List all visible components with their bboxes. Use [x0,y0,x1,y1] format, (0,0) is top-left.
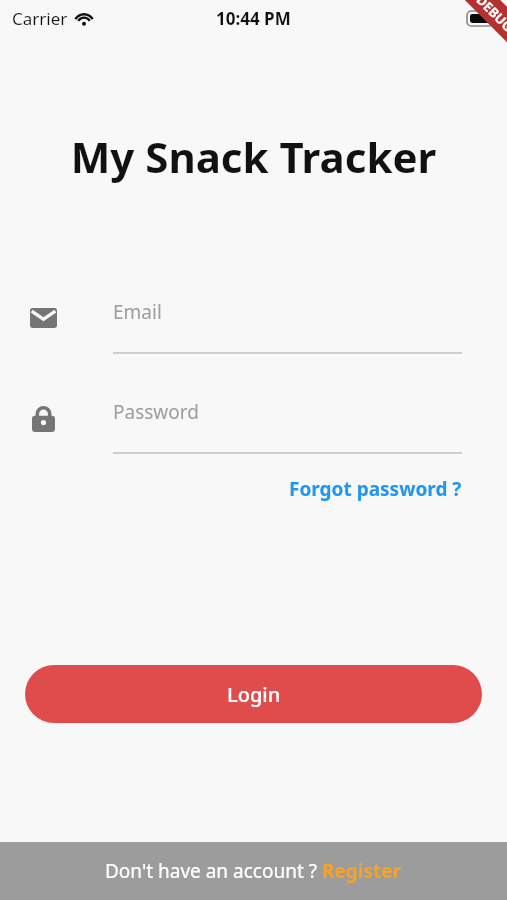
staticText: Register [322,858,402,884]
button[interactable]: Forgot password ? [244,472,507,506]
other: Password [32,405,55,432]
staticText: Carrier [12,7,68,30]
staticText: Don't have an account ? [105,858,322,884]
staticText: My Snack Tracker [0,128,507,185]
button[interactable]: Don't have an account ? [0,842,507,900]
staticText: Password [113,399,199,425]
button[interactable]: Login [25,665,482,723]
button[interactable]: Password [0,390,507,454]
staticText: Login [227,681,281,708]
staticText: Email [113,299,162,325]
button[interactable]: Email [0,290,507,354]
staticText: Forgot password ? [289,476,462,502]
staticText: 10:44 PM [216,7,291,30]
staticText: DEBUG [473,0,507,35]
other: Email [30,308,57,328]
